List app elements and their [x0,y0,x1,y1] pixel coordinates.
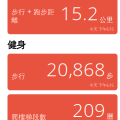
staticText: 今天 下午6:15 [89,82,113,88]
staticText: 15.2 [60,1,98,25]
staticText: 步行 + 跑步距離 [11,7,54,24]
staticText: 爬樓梯段數 [11,113,46,120]
button[interactable]: 步行 [2,54,117,90]
staticText: 步 [106,72,113,80]
staticText: 步行 [11,72,25,80]
staticText: 20,868 [46,57,105,81]
staticText: 層 [106,112,113,120]
staticText: 今天 下午6:15 [89,26,113,32]
button[interactable]: 步行 + 跑步距離 [2,0,117,34]
button[interactable]: 爬樓梯段數 [2,94,117,120]
staticText: 209 [72,97,105,120]
staticText: 健身 [7,39,25,51]
staticText: 公里 [99,16,113,24]
